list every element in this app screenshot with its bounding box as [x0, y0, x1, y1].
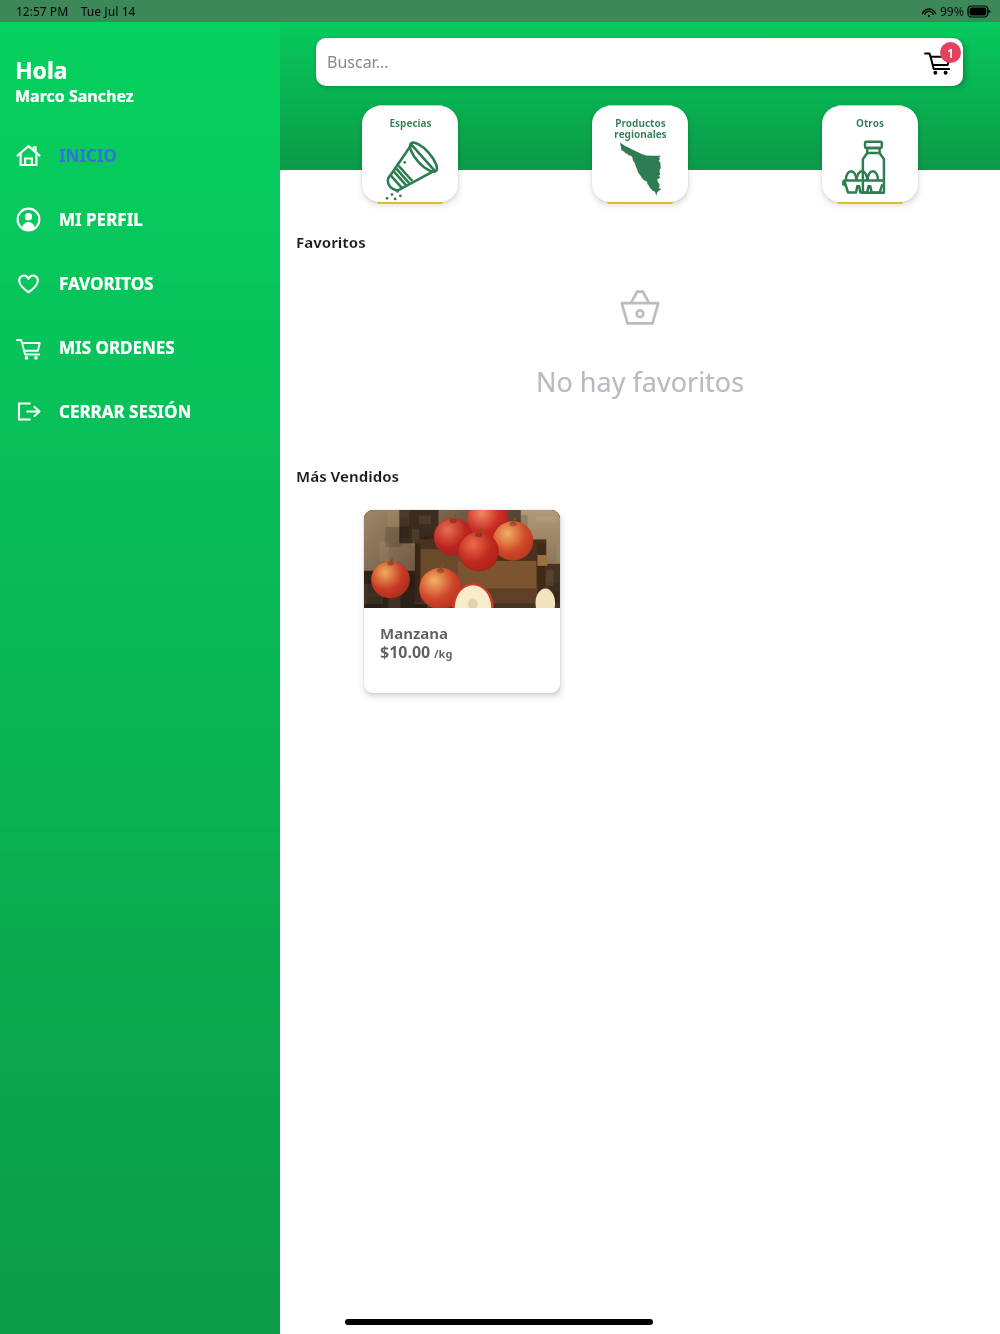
- staticText: Otros: [856, 116, 884, 130]
- staticText: Manzana: [380, 623, 448, 643]
- staticText: INICIO: [59, 144, 118, 167]
- staticText: Favoritos: [296, 232, 366, 252]
- button[interactable]: MIS ORDENES: [0, 315, 280, 379]
- staticText: FAVORITOS: [59, 272, 154, 295]
- button[interactable]: Especias: [362, 106, 458, 202]
- staticText: 99%: [940, 3, 964, 19]
- staticText: MIS ORDENES: [59, 336, 175, 359]
- staticText: Productos regionales: [614, 116, 667, 141]
- staticText: CERRAR SESIÓN: [59, 400, 192, 423]
- staticText: MI PERFIL: [59, 208, 143, 231]
- staticText: Hola: [15, 54, 68, 85]
- button[interactable]: Otros: [822, 106, 918, 202]
- staticText: Especias: [389, 116, 432, 130]
- staticText: Más Vendidos: [296, 466, 400, 486]
- button[interactable]: Productos regionales: [592, 106, 688, 202]
- button[interactable]: MI PERFIL: [0, 187, 280, 251]
- button[interactable]: Manzana: [364, 510, 560, 693]
- staticText: $10.00: [380, 641, 431, 663]
- staticText: /kg: [434, 646, 453, 661]
- staticText: Marco Sanchez: [15, 85, 134, 107]
- button[interactable]: FAVORITOS: [0, 251, 280, 315]
- button[interactable]: CERRAR SESIÓN: [0, 379, 280, 443]
- staticText: 1: [947, 44, 955, 62]
- button[interactable]: INICIO: [0, 123, 280, 187]
- staticText: 12:57 PM Tue Jul 14: [16, 3, 136, 19]
- staticText: No hay favoritos: [536, 363, 745, 400]
- button[interactable]: Carrito de compras: [924, 44, 961, 81]
- button[interactable]: Buscar...: [316, 38, 963, 86]
- staticText: Buscar...: [327, 51, 389, 73]
